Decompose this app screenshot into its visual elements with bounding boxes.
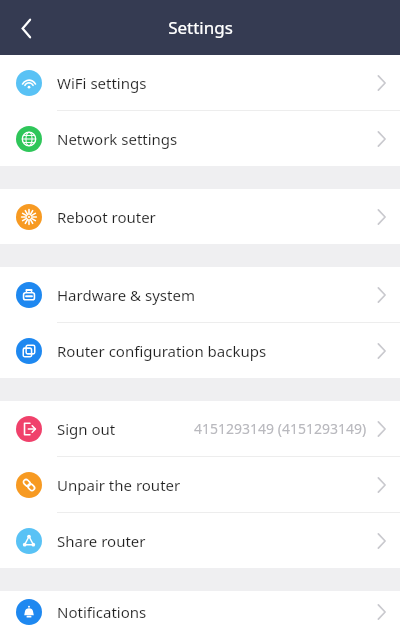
button[interactable]: Back <box>0 2 52 54</box>
button[interactable]: WiFi settings <box>0 55 400 110</box>
staticText: Reboot router <box>57 207 156 227</box>
button[interactable]: Unpair the router <box>0 457 400 512</box>
button[interactable]: Network settings <box>0 111 400 166</box>
button[interactable]: Sign out <box>0 401 400 456</box>
staticText: 4151293149 (4151293149) <box>194 419 367 438</box>
staticText: Settings <box>168 16 233 39</box>
staticText: WiFi settings <box>57 73 147 93</box>
button[interactable]: Reboot router <box>0 189 400 244</box>
staticText: Share router <box>57 531 146 551</box>
staticText: Notifications <box>57 602 147 622</box>
staticText: Sign out <box>57 419 116 439</box>
button[interactable]: Router configuration backups <box>0 323 400 378</box>
button[interactable]: Share router <box>0 513 400 568</box>
staticText: Unpair the router <box>57 475 181 495</box>
staticText: Network settings <box>57 129 178 149</box>
button[interactable]: Hardware & system <box>0 267 400 322</box>
button[interactable]: Notifications <box>0 591 400 633</box>
staticText: Router configuration backups <box>57 341 267 361</box>
staticText: Hardware & system <box>57 285 195 305</box>
